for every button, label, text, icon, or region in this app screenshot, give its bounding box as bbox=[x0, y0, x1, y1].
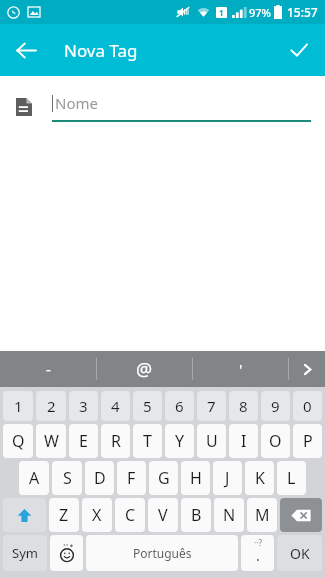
staticText: - bbox=[46, 359, 51, 379]
button[interactable]: Q bbox=[3, 424, 33, 458]
staticText: R bbox=[111, 430, 121, 452]
button[interactable]: O bbox=[261, 424, 290, 458]
button[interactable]: G bbox=[149, 461, 178, 495]
staticText: 4 bbox=[111, 396, 120, 416]
button[interactable]: 4 bbox=[101, 391, 130, 421]
button[interactable]: @ bbox=[97, 351, 192, 387]
button[interactable]: 8 bbox=[229, 391, 258, 421]
staticText: F bbox=[127, 467, 136, 489]
button[interactable]: 3 bbox=[69, 391, 98, 421]
staticText: Q bbox=[12, 430, 25, 452]
button[interactable]: C bbox=[115, 498, 145, 532]
button[interactable]: R bbox=[101, 424, 130, 458]
staticText: G bbox=[158, 467, 170, 489]
button[interactable]: S bbox=[52, 461, 82, 495]
staticText: U bbox=[206, 430, 218, 452]
staticText: ' bbox=[239, 359, 243, 379]
staticText: 2 bbox=[47, 396, 56, 416]
staticText: Y bbox=[175, 430, 185, 452]
staticText: OK bbox=[290, 544, 310, 563]
staticText: Nova Tag bbox=[64, 39, 138, 62]
button[interactable]: H bbox=[181, 461, 210, 495]
button[interactable]: T bbox=[133, 424, 162, 458]
staticText: Sym bbox=[12, 544, 38, 562]
button[interactable]: OK bbox=[277, 535, 322, 571]
staticText: S bbox=[63, 467, 72, 489]
staticText: 0 bbox=[303, 396, 312, 416]
button[interactable]: M bbox=[247, 498, 277, 532]
button[interactable]: Emoji bbox=[50, 535, 83, 571]
staticText: 1 bbox=[14, 396, 23, 416]
staticText: @ bbox=[136, 357, 153, 382]
button[interactable]: Nome bbox=[52, 93, 311, 122]
button[interactable]: U bbox=[197, 424, 226, 458]
button[interactable]: Backspace bbox=[280, 498, 322, 532]
staticText: L bbox=[287, 467, 296, 489]
button[interactable]: I bbox=[229, 424, 258, 458]
staticText: O bbox=[269, 430, 282, 452]
button[interactable]: Z bbox=[49, 498, 79, 532]
button[interactable]: P bbox=[293, 424, 322, 458]
staticText: 97% bbox=[249, 5, 271, 20]
staticText: M bbox=[255, 504, 270, 526]
staticText: Nome bbox=[55, 93, 98, 113]
button[interactable]: Back bbox=[6, 30, 46, 70]
staticText: X bbox=[92, 504, 102, 526]
staticText: · bbox=[256, 550, 260, 569]
button[interactable]: 5 bbox=[133, 391, 162, 421]
button[interactable]: More suggestions bbox=[289, 351, 325, 387]
button[interactable]: J bbox=[213, 461, 242, 495]
button[interactable]: K bbox=[245, 461, 274, 495]
button[interactable]: Save bbox=[279, 30, 319, 70]
button[interactable]: Português bbox=[86, 535, 238, 571]
button[interactable]: V bbox=[148, 498, 178, 532]
staticText: 3 bbox=[79, 396, 88, 416]
button[interactable]: E bbox=[69, 424, 98, 458]
button[interactable]: D bbox=[85, 461, 114, 495]
button[interactable]: L bbox=[277, 461, 306, 495]
staticText: W bbox=[44, 430, 59, 452]
staticText: 7 bbox=[207, 396, 216, 416]
staticText: V bbox=[158, 504, 168, 526]
staticText: N bbox=[223, 504, 236, 526]
staticText: Z bbox=[59, 504, 69, 526]
button[interactable]: B bbox=[181, 498, 211, 532]
staticText: C bbox=[125, 504, 136, 526]
staticText: 8 bbox=[239, 396, 248, 416]
staticText: K bbox=[255, 467, 265, 489]
button[interactable]: A bbox=[19, 461, 49, 495]
staticText: T bbox=[143, 430, 152, 452]
button[interactable]: Period bbox=[241, 535, 274, 571]
button[interactable]: N bbox=[214, 498, 244, 532]
staticText: I bbox=[241, 430, 247, 452]
button[interactable]: 7 bbox=[197, 391, 226, 421]
staticText: ··? bbox=[254, 537, 262, 548]
staticText: 15:57 bbox=[287, 4, 318, 20]
staticText: H bbox=[190, 467, 202, 489]
button[interactable]: F bbox=[117, 461, 146, 495]
staticText: D bbox=[94, 467, 106, 489]
button[interactable]: - bbox=[0, 351, 96, 387]
staticText: P bbox=[303, 430, 313, 452]
button[interactable]: Sym bbox=[3, 535, 47, 571]
staticText: A bbox=[29, 467, 40, 489]
staticText: B bbox=[191, 504, 202, 526]
button[interactable]: Shift bbox=[3, 498, 46, 532]
button[interactable]: X bbox=[82, 498, 112, 532]
button[interactable]: W bbox=[36, 424, 66, 458]
staticText: Português bbox=[133, 545, 192, 561]
button[interactable]: 6 bbox=[165, 391, 194, 421]
staticText: E bbox=[79, 430, 88, 452]
button[interactable]: 1 bbox=[3, 391, 33, 421]
button[interactable]: 0 bbox=[293, 391, 322, 421]
staticText: 1 bbox=[219, 7, 224, 18]
button[interactable]: Y bbox=[165, 424, 194, 458]
button[interactable]: 2 bbox=[36, 391, 66, 421]
button[interactable]: 9 bbox=[261, 391, 290, 421]
button[interactable]: ' bbox=[193, 351, 288, 387]
staticText: 9 bbox=[271, 396, 280, 416]
staticText: 5 bbox=[143, 396, 152, 416]
staticText: 6 bbox=[175, 396, 184, 416]
staticText: J bbox=[225, 467, 230, 489]
